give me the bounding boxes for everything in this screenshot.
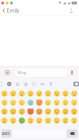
button[interactable]: Emoji category	[5, 79, 13, 89]
button[interactable]: Delete	[71, 79, 79, 89]
button[interactable]: Emoji category	[38, 79, 47, 89]
staticText: Msg	[18, 70, 26, 75]
button[interactable]: Emoji category	[47, 79, 55, 89]
staticText: ABC	[2, 131, 11, 136]
button[interactable]: Emily	[0, 5, 19, 16]
staticText: Emily	[6, 7, 19, 14]
button[interactable]: Delete	[67, 129, 78, 138]
button[interactable]: Emoji category	[13, 79, 22, 89]
button[interactable]: Emoji category	[0, 79, 5, 89]
button[interactable]: Emoji category	[30, 79, 38, 89]
button[interactable]: Voice message	[67, 66, 77, 79]
button[interactable]: Camera	[0, 66, 15, 79]
button[interactable]: Emoji category	[22, 79, 30, 89]
button[interactable]: ABC	[1, 129, 11, 138]
button[interactable]: Contact info	[68, 7, 79, 14]
